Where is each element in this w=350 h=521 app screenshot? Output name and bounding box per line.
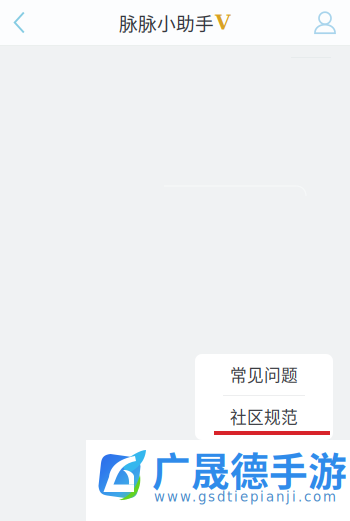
button[interactable]: Profile [300, 0, 350, 45]
button[interactable]: 社区规范 [195, 396, 333, 437]
staticText: www.gsdtiepianji.com [154, 489, 336, 505]
staticText: 脉脉小助手 [119, 9, 214, 36]
staticText: V [215, 11, 231, 34]
button[interactable]: 常见问题 [195, 354, 333, 395]
button[interactable]: Back [0, 0, 38, 45]
staticText: 常见问题 [230, 362, 298, 386]
staticText: 广晟德手游 [152, 441, 347, 497]
staticText: 社区规范 [230, 404, 298, 428]
